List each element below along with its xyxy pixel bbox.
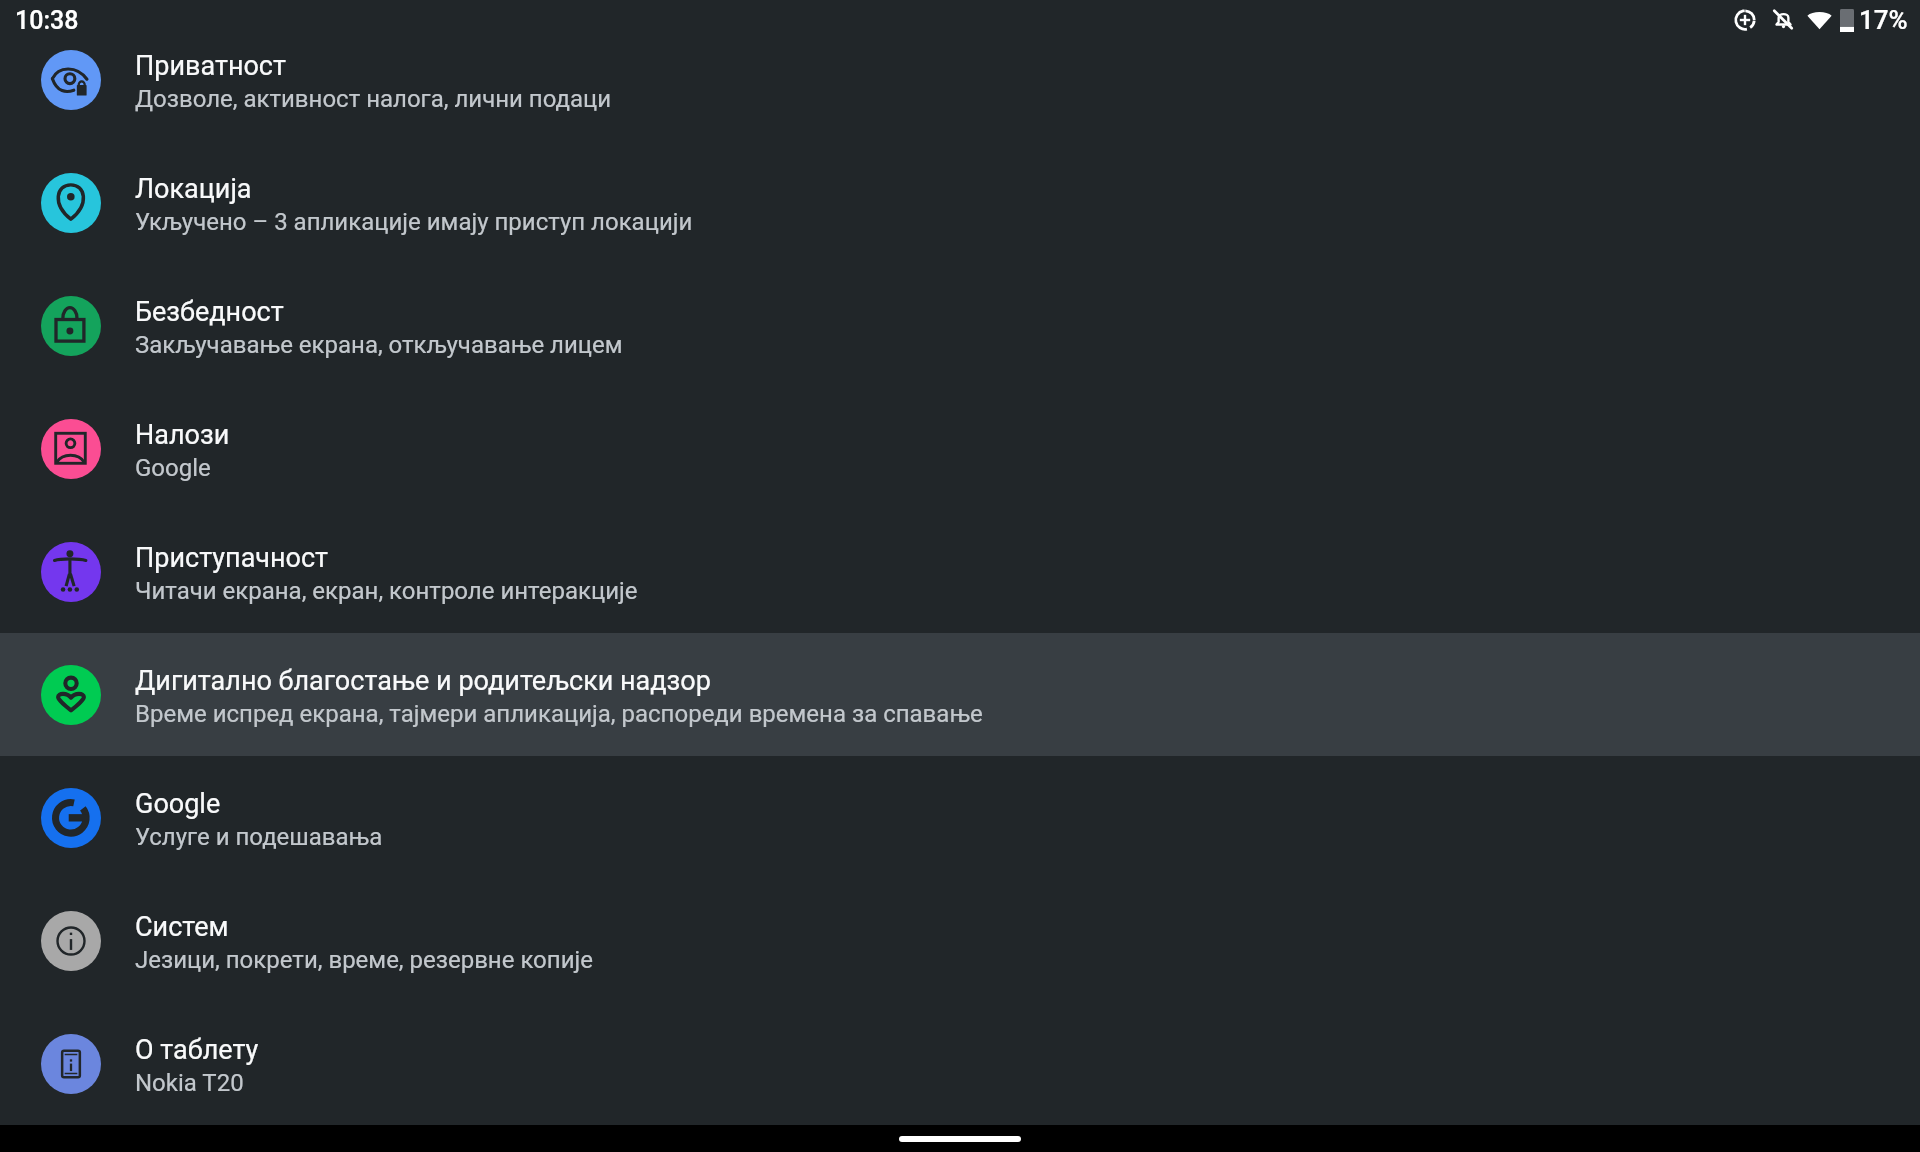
other: Wi-Fi: [1807, 8, 1832, 33]
staticText: Дозволе, активност налога, лични подаци: [135, 85, 612, 113]
staticText: Читачи екрана, екран, контроле интеракци…: [135, 577, 638, 605]
staticText: Приступачност: [135, 542, 329, 574]
button[interactable]: Приватност: [0, 18, 1920, 141]
staticText: Језици, покрети, време, резервне копије: [135, 946, 593, 974]
staticText: Дигитално благостање и родитељски надзор: [135, 665, 711, 697]
button[interactable]: Безбедност: [0, 264, 1920, 387]
staticText: Приватност: [135, 50, 286, 82]
staticText: Nokia T20: [135, 1069, 244, 1097]
button[interactable]: Приступачност: [0, 510, 1920, 633]
staticText: Време испред екрана, тајмери апликација,…: [135, 700, 983, 728]
staticText: Google: [135, 454, 211, 482]
staticText: Google: [135, 788, 221, 820]
button[interactable]: Локација: [0, 141, 1920, 264]
other: Focus mode: [1733, 8, 1757, 32]
staticText: 10:38: [15, 6, 79, 35]
other: Battery: [1840, 9, 1854, 32]
button[interactable]: О таблету: [0, 1002, 1920, 1125]
button[interactable]: Google: [0, 756, 1920, 879]
staticText: Услуге и подешавања: [135, 823, 383, 851]
staticText: 17%: [1859, 5, 1908, 35]
staticText: Систем: [135, 911, 229, 943]
staticText: Налози: [135, 419, 230, 451]
button[interactable]: Дигитално благостање и родитељски надзор: [0, 633, 1920, 756]
staticText: Локација: [135, 173, 252, 205]
other: Notifications silenced: [1771, 8, 1796, 33]
button[interactable]: Налози: [0, 387, 1920, 510]
button[interactable]: Систем: [0, 879, 1920, 1002]
staticText: Укључено – 3 апликације имају приступ ло…: [135, 208, 693, 236]
staticText: Безбедност: [135, 296, 284, 328]
staticText: О таблету: [135, 1034, 259, 1066]
staticText: Закључавање екрана, откључавање лицем: [135, 331, 623, 359]
